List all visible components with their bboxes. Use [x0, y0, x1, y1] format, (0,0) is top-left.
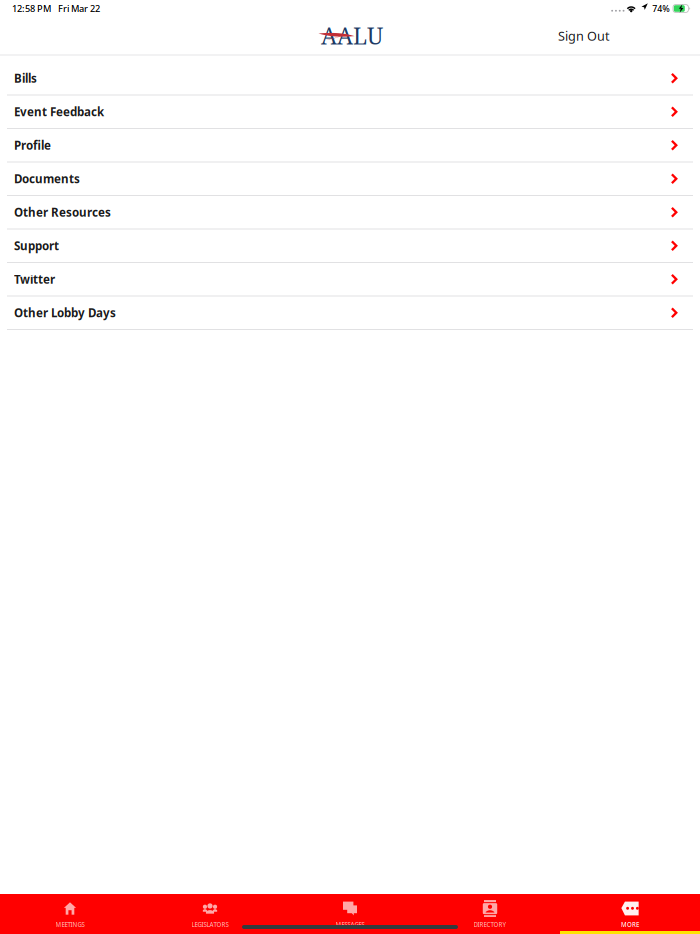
staticText: Documents	[14, 171, 80, 187]
staticText: 12:58 PM	[12, 2, 51, 15]
staticText: Twitter	[14, 271, 55, 287]
button[interactable]: Bills	[0, 62, 700, 94]
staticText: AALU	[321, 20, 383, 51]
button[interactable]: LEGISLATORS	[140, 894, 280, 934]
button[interactable]: Event Feedback	[0, 95, 700, 128]
staticText: Sign Out	[558, 27, 610, 44]
button[interactable]: Documents	[0, 162, 700, 195]
staticText: MORE	[621, 920, 639, 929]
button[interactable]: Other Resources	[0, 196, 700, 228]
staticText: Other Resources	[14, 204, 111, 220]
staticText: MEETINGS	[55, 920, 84, 929]
button[interactable]: MESSAGES	[280, 894, 420, 934]
staticText: Support	[14, 238, 59, 254]
button[interactable]: Twitter	[0, 263, 700, 295]
staticText: 74%	[652, 2, 669, 14]
button[interactable]: Other Lobby Days	[0, 296, 700, 329]
staticText: LEGISLATORS	[191, 920, 228, 929]
button[interactable]: Sign Out	[544, 20, 624, 51]
staticText: DIRECTORY	[473, 920, 506, 929]
staticText: Fri Mar 22	[58, 2, 100, 15]
button[interactable]: MORE	[560, 894, 700, 934]
staticText: Bills	[14, 70, 37, 86]
staticText: Event Feedback	[14, 104, 104, 120]
button[interactable]: Profile	[0, 129, 700, 161]
staticText: Profile	[14, 137, 51, 153]
staticText: Other Lobby Days	[14, 305, 116, 321]
button[interactable]: MEETINGS	[0, 894, 140, 934]
staticText: MESSAGES	[335, 920, 364, 929]
button[interactable]: DIRECTORY	[420, 894, 560, 934]
button[interactable]: Support	[0, 229, 700, 262]
